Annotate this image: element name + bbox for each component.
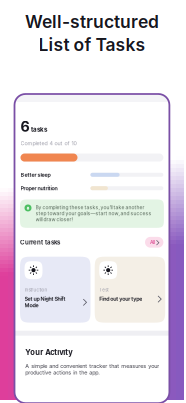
staticText: A simple and convenient tracker that mea… bbox=[25, 363, 159, 376]
staticText: Find out your type bbox=[99, 296, 142, 302]
staticText: Instruction bbox=[24, 287, 47, 293]
button[interactable]: Instruction bbox=[20, 257, 90, 323]
staticText: Your Activity bbox=[25, 348, 72, 357]
staticText: Set up Night Shift Mode bbox=[24, 296, 65, 309]
staticText: tasks bbox=[31, 126, 47, 133]
staticText: Well-structured bbox=[25, 11, 159, 32]
staticText: List of Tasks bbox=[38, 34, 145, 55]
staticText: Proper nutrition bbox=[20, 185, 57, 191]
staticText: Better sleep bbox=[20, 172, 50, 178]
staticText: All bbox=[150, 239, 155, 245]
button[interactable]: All bbox=[145, 237, 163, 248]
staticText: By completing these tasks, you'll take a… bbox=[35, 204, 151, 222]
staticText: 6 bbox=[20, 118, 29, 135]
staticText: Current tasks bbox=[20, 239, 60, 246]
staticText: Test bbox=[99, 287, 108, 293]
staticText: Completed 4 out of 10 bbox=[20, 140, 76, 147]
button[interactable]: Test bbox=[95, 257, 165, 323]
